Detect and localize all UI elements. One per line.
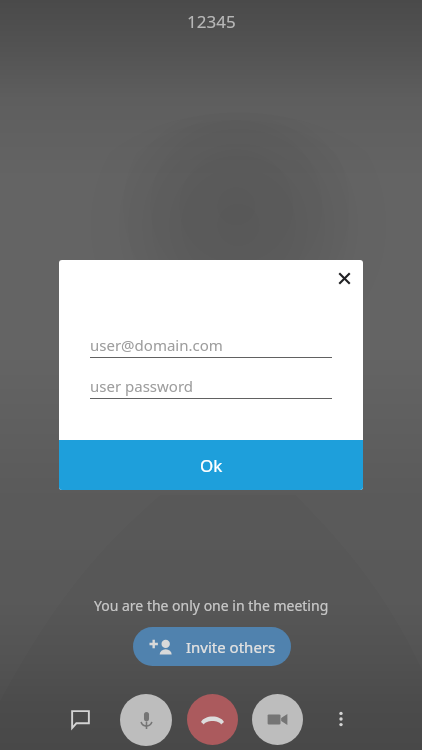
button[interactable]: Ok [59,440,363,490]
staticText: Ok [200,454,223,477]
staticText: Invite others [186,637,276,657]
button[interactable]: Invite others [133,627,291,666]
staticText: 12345 [187,10,236,33]
button[interactable]: Turn off camera [252,694,303,745]
button[interactable]: Chat [57,696,104,743]
button[interactable]: More options [318,696,364,742]
staticText: user@domain.com [90,335,223,355]
button[interactable]: End call [187,694,238,745]
button[interactable]: Close [326,260,362,296]
staticText: user password [90,376,194,396]
staticText: You are the only one in the meeting [94,596,329,615]
button[interactable]: Mute microphone [120,694,172,746]
